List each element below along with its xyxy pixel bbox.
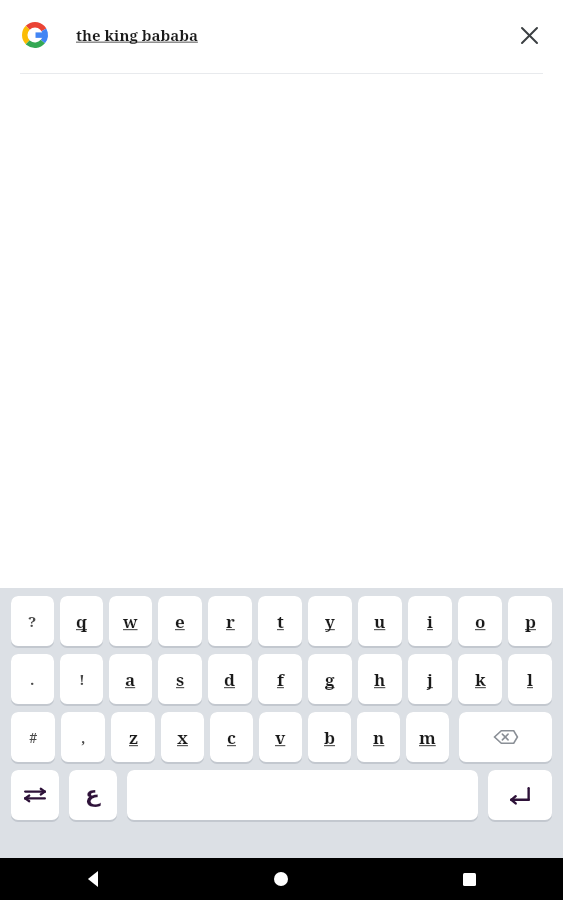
staticText: ? [28,611,37,631]
button[interactable]: t [258,596,302,646]
button[interactable]: c [210,712,253,762]
button[interactable]: h [358,654,402,704]
staticText: t [277,610,284,633]
staticText: j [427,668,433,691]
staticText: l [527,668,533,691]
button[interactable]: # [11,712,55,762]
button[interactable]: ? [11,596,54,646]
staticText: e [175,610,185,633]
button[interactable]: b [308,712,351,762]
button[interactable]: n [357,712,400,762]
button[interactable]: o [458,596,502,646]
staticText: x [177,726,188,749]
staticText: c [227,726,236,749]
button[interactable]: ! [60,654,103,704]
button[interactable]: r [208,596,252,646]
staticText: n [373,726,385,749]
button[interactable]: y [308,596,352,646]
button[interactable]: Clear search [505,11,553,59]
staticText: # [29,727,38,747]
button[interactable]: Home [187,858,375,900]
staticText: g [325,668,335,691]
button[interactable]: u [358,596,402,646]
button[interactable]: s [158,654,202,704]
button[interactable]: Switch language [11,770,59,820]
staticText: b [324,726,336,749]
button[interactable]: q [60,596,103,646]
button[interactable]: f [258,654,302,704]
staticText: q [76,610,88,633]
button[interactable]: a [109,654,152,704]
button[interactable]: Backspace [459,712,552,762]
staticText: , [81,727,86,747]
staticText: z [129,726,138,749]
staticText: h [374,668,386,691]
button[interactable]: m [406,712,449,762]
button[interactable]: Back [0,858,187,900]
staticText: v [275,726,286,749]
button[interactable]: Google [20,20,50,50]
staticText: w [123,610,138,633]
button[interactable]: the king bababa [76,0,505,70]
button[interactable]: z [111,712,155,762]
button[interactable]: j [408,654,452,704]
staticText: . [30,669,35,689]
staticText: the king bababa [76,25,198,45]
button[interactable]: p [508,596,552,646]
staticText: a [125,668,136,691]
button[interactable]: Recent apps [375,858,563,900]
button[interactable]: w [109,596,152,646]
staticText: f [277,668,284,691]
button[interactable]: e [158,596,202,646]
button[interactable]: k [458,654,502,704]
button[interactable]: l [508,654,552,704]
button[interactable]: g [308,654,352,704]
staticText: y [325,610,335,633]
button[interactable]: v [259,712,302,762]
staticText: ع [85,782,101,808]
button[interactable]: d [208,654,252,704]
staticText: o [475,610,486,633]
staticText: i [427,610,433,633]
staticText: u [374,610,386,633]
button[interactable]: . [11,654,54,704]
staticText: p [525,610,536,633]
staticText: d [224,668,236,691]
staticText: s [176,668,185,691]
staticText: ! [79,669,85,689]
staticText: k [475,668,486,691]
button[interactable]: , [61,712,105,762]
button[interactable]: Arabic letter ain [69,770,117,820]
staticText: m [419,726,436,749]
button[interactable]: Enter [488,770,552,820]
button[interactable]: i [408,596,452,646]
staticText: r [226,610,235,633]
button[interactable]: x [161,712,204,762]
